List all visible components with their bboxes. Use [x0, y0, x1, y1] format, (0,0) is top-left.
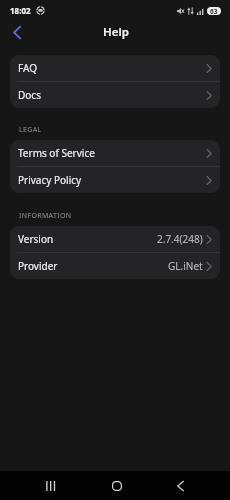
staticText: Docs	[18, 88, 41, 102]
button[interactable]: Back	[166, 471, 195, 500]
staticText: GL.iNet	[168, 259, 203, 273]
staticText: Help	[103, 24, 129, 40]
staticText: Provider	[18, 259, 58, 273]
button[interactable]: Docs	[10, 82, 220, 108]
staticText: 2.7.4(248)	[157, 232, 203, 246]
button[interactable]: Terms of Service	[10, 140, 220, 166]
staticText: 18:02	[10, 5, 31, 16]
button[interactable]: Recent apps	[36, 471, 65, 500]
button[interactable]: Privacy Policy	[10, 167, 220, 193]
button[interactable]: Provider	[10, 253, 220, 279]
button[interactable]: Back	[5, 20, 29, 44]
button[interactable]: FAQ	[10, 55, 220, 81]
staticText: 63	[210, 7, 218, 15]
button[interactable]: Version	[10, 226, 220, 252]
button[interactable]: Home	[102, 471, 131, 500]
staticText: Terms of Service	[18, 146, 95, 160]
staticText: LEGAL	[19, 125, 42, 135]
staticText: Version	[18, 232, 54, 246]
staticText: Privacy Policy	[18, 173, 82, 187]
staticText: FAQ	[18, 61, 37, 75]
staticText: INFORMATION	[19, 211, 72, 221]
